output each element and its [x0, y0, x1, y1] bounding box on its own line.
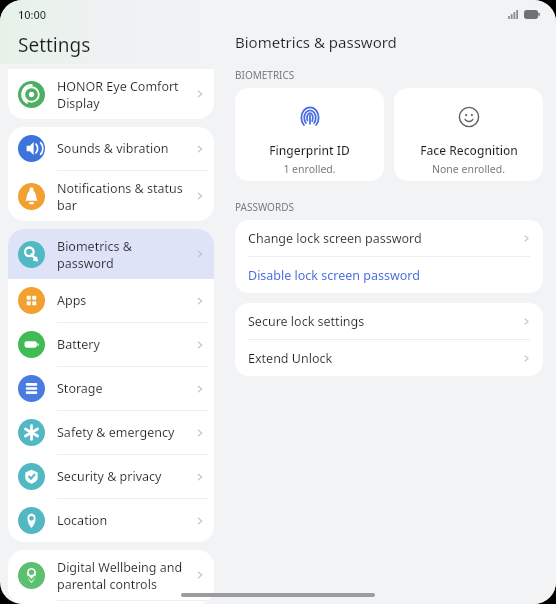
button[interactable]: Location	[8, 499, 214, 542]
staticText: Disable lock screen password	[248, 267, 532, 284]
staticText: PASSWORDS	[235, 200, 294, 214]
button[interactable]: Security & privacy	[8, 455, 214, 499]
staticText: Digital Wellbeing and parental controls	[57, 559, 194, 592]
staticText: Security & privacy	[57, 468, 194, 485]
staticText: Safety & emergency	[57, 424, 194, 441]
staticText: Biometrics & password	[235, 32, 397, 52]
button[interactable]: Fingerprint ID	[235, 88, 384, 181]
staticText: Secure lock settings	[248, 313, 521, 330]
staticText: Fingerprint ID	[269, 142, 350, 158]
button[interactable]: Biometrics & password	[8, 229, 214, 279]
staticText: Battery	[57, 336, 194, 353]
button[interactable]: Disable lock screen password	[235, 257, 543, 293]
staticText: HONOR Eye Comfort Display	[57, 78, 194, 111]
button[interactable]: Apps	[8, 279, 214, 323]
staticText: None enrolled.	[432, 162, 505, 176]
button[interactable]: Storage	[8, 367, 214, 411]
staticText: Change lock screen password	[248, 230, 521, 247]
button[interactable]: Extend Unlock	[235, 340, 543, 376]
other: Face Recognition	[457, 105, 481, 129]
staticText: 1 enrolled.	[283, 162, 336, 176]
button[interactable]: Digital Wellbeing and parental controls	[8, 550, 214, 601]
staticText: Face Recognition	[420, 142, 518, 158]
staticText: Location	[57, 512, 194, 529]
button[interactable]: Face Recognition	[394, 88, 543, 181]
button[interactable]: HONOR Eye Comfort Display	[8, 69, 214, 119]
other: Fingerprint ID	[298, 105, 322, 129]
staticText: Biometrics & password	[57, 238, 194, 271]
staticText: Apps	[57, 292, 194, 309]
button[interactable]: Safety & emergency	[8, 411, 214, 455]
staticText: Storage	[57, 380, 194, 397]
button[interactable]: Sounds & vibration	[8, 127, 214, 171]
staticText: 10:00	[18, 7, 47, 22]
staticText: Extend Unlock	[248, 350, 521, 367]
staticText: Settings	[18, 32, 91, 58]
staticText: Notifications & status bar	[57, 180, 194, 213]
staticText: Sounds & vibration	[57, 140, 194, 157]
button[interactable]: Notifications & status bar	[8, 171, 214, 221]
button[interactable]: Battery	[8, 323, 214, 367]
button[interactable]: Change lock screen password	[235, 220, 543, 257]
staticText: BIOMETRICS	[235, 68, 295, 82]
button[interactable]: Secure lock settings	[235, 303, 543, 340]
